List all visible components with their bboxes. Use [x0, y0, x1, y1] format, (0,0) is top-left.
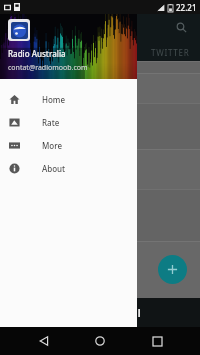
staticText: Rate: [42, 117, 60, 128]
staticText: Home: [42, 94, 66, 105]
staticText: Radio Australia: [8, 48, 66, 59]
button[interactable]: Pause: [129, 305, 145, 321]
staticText: TWITTER: [151, 47, 190, 58]
staticText: 22.21: [176, 2, 197, 13]
button[interactable]: Home: [0, 88, 137, 111]
button[interactable]: Recents: [144, 328, 170, 354]
button[interactable]: Home: [87, 328, 113, 354]
button[interactable]: Search: [173, 19, 190, 36]
staticText: About: [42, 163, 66, 174]
button[interactable]: Back: [31, 328, 57, 354]
staticText: contat@radiomoob.com: [8, 63, 88, 73]
button[interactable]: Rate: [0, 111, 137, 134]
button[interactable]: Twitter tab: [151, 47, 190, 58]
staticText: More: [42, 140, 63, 151]
button[interactable]: About: [0, 157, 137, 180]
button[interactable]: Add: [158, 255, 187, 284]
button[interactable]: More: [0, 134, 137, 157]
